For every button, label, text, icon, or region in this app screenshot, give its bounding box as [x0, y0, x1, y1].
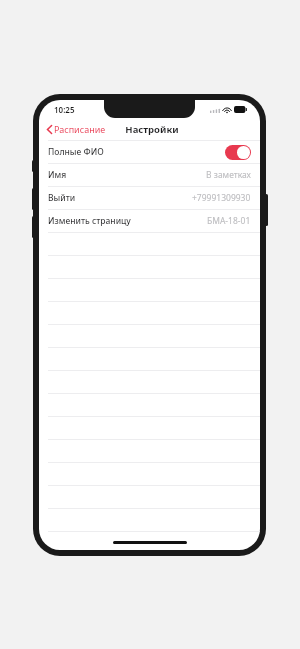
button[interactable]: Полные ФИО	[39, 141, 260, 163]
button[interactable]: Полные ФИО toggle	[225, 145, 251, 160]
staticText: В заметках	[206, 169, 251, 181]
staticText: Настройки	[125, 123, 179, 136]
button[interactable]: Расписание	[39, 120, 112, 138]
staticText: Изменить страницу	[48, 215, 131, 227]
button[interactable]: Выйти	[39, 187, 260, 209]
staticText: Имя	[48, 169, 67, 181]
button[interactable]: Имя	[39, 164, 260, 186]
button[interactable]: Изменить страницу	[39, 210, 260, 232]
staticText: Расписание	[54, 123, 106, 135]
staticText: +79991309930	[192, 192, 251, 204]
staticText: 10:25	[54, 104, 75, 115]
staticText: Выйти	[48, 192, 76, 204]
staticText: Полные ФИО	[48, 146, 104, 158]
staticText: БМА-18-01	[207, 215, 251, 227]
